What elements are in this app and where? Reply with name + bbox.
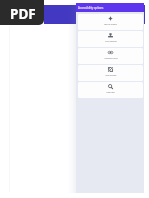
staticText: PDF: [10, 5, 36, 23]
button[interactable]: Text to Speech: [78, 14, 143, 30]
staticText: Highlight Links: [104, 57, 118, 60]
staticText: Text to Speech: [104, 23, 117, 26]
staticText: Hide images: [105, 74, 117, 77]
other: Light text: [108, 84, 113, 89]
button[interactable]: Font spacing: [78, 31, 143, 47]
button[interactable]: Light text: [78, 82, 143, 98]
staticText: Font spacing: [105, 40, 117, 43]
staticText: Accessibility options: [78, 6, 104, 10]
other: Hide images: [108, 67, 113, 72]
other: Text to Speech: [108, 16, 113, 21]
button[interactable]: Highlight Links: [78, 48, 143, 64]
button[interactable]: PDF: [0, 0, 44, 25]
other: Highlight Links: [108, 50, 113, 55]
button[interactable]: Hide images: [78, 65, 143, 81]
staticText: Light text: [106, 91, 115, 94]
other: Font spacing: [108, 33, 113, 38]
